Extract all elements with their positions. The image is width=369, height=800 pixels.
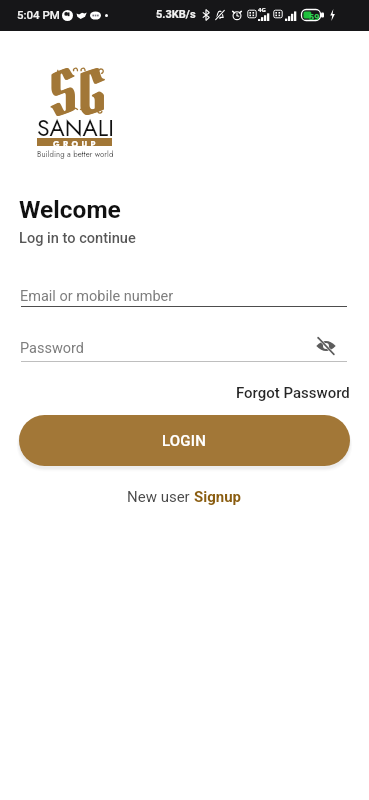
button[interactable]: Forgot Password [236, 384, 350, 402]
staticText: 5:04 PM [17, 8, 60, 21]
staticText: GROUP [53, 138, 99, 146]
staticText: 59 [309, 10, 320, 22]
button[interactable]: LOGIN [19, 415, 350, 466]
staticText: Password [20, 340, 85, 357]
staticText: New user [127, 488, 194, 506]
staticText: Building a better world [37, 149, 114, 160]
staticText: SANALI [37, 111, 114, 144]
staticText: 5.3KB/s [156, 8, 196, 21]
staticText: Log in to continue [19, 229, 136, 246]
staticText: Email or mobile number [20, 288, 174, 305]
staticText: SG [48, 54, 106, 132]
button[interactable]: Signup [194, 488, 242, 506]
staticText: Welcome [19, 195, 121, 224]
staticText: LOGIN [162, 432, 207, 450]
button[interactable]: Show password [312, 332, 340, 360]
staticText: SG [49, 54, 107, 132]
staticText: 4G [258, 6, 266, 14]
